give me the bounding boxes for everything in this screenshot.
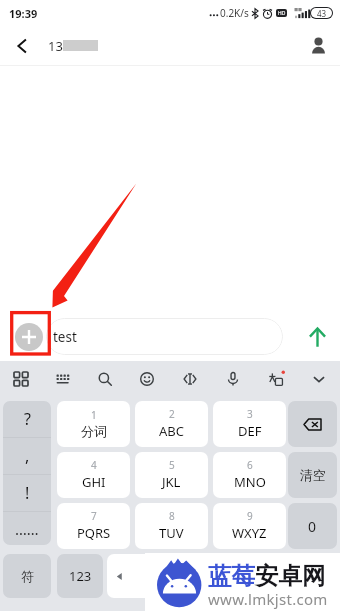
button[interactable]: 8 — [135, 503, 208, 549]
staticText: JKL — [162, 473, 181, 491]
staticText: test — [53, 328, 77, 346]
button[interactable]: test — [46, 318, 283, 355]
staticText: 7 — [91, 509, 97, 523]
button[interactable]: Keyboard layout — [42, 361, 84, 397]
staticText: 蓝莓 — [208, 561, 255, 591]
button[interactable]: 7 — [57, 503, 130, 549]
button[interactable]: 5 — [135, 452, 208, 498]
button[interactable]: 符 — [3, 554, 51, 598]
button[interactable]: 0 — [288, 503, 337, 549]
button[interactable]: Translate — [254, 361, 297, 397]
staticText: 5 — [169, 458, 175, 472]
button[interactable]: Backspace — [288, 401, 337, 447]
staticText: 4 — [91, 458, 97, 472]
button[interactable]: Apps — [0, 361, 42, 397]
staticText: 13 — [48, 37, 63, 55]
staticText: 43 — [317, 8, 327, 18]
button[interactable]: 6 — [213, 452, 286, 498]
staticText: MNO — [234, 473, 266, 491]
button[interactable]: 1 — [57, 401, 130, 447]
staticText: HD — [278, 10, 286, 17]
staticText: 分词 — [81, 423, 107, 439]
button[interactable]: Emoji — [126, 361, 168, 397]
staticText: ABC — [159, 422, 184, 440]
button[interactable]: Search — [84, 361, 126, 397]
staticText: 1 — [91, 408, 97, 422]
button[interactable]: 2 — [135, 401, 208, 447]
button[interactable]: Send — [299, 319, 335, 355]
staticText: 2 — [169, 407, 175, 421]
staticText: 0.2K/s — [220, 6, 249, 20]
staticText: DEF — [238, 422, 262, 440]
staticText: TUV — [159, 524, 184, 542]
staticText: 9 — [247, 509, 253, 523]
button[interactable]: Add attachment — [15, 323, 43, 351]
button[interactable]: 4 — [57, 452, 130, 498]
button[interactable]: Clipboard — [168, 361, 211, 397]
button[interactable]: Back — [0, 26, 44, 65]
button[interactable]: Voice input — [211, 361, 254, 397]
staticText: 8 — [169, 509, 175, 523]
button[interactable]: 3 — [213, 401, 286, 447]
button[interactable]: , — [3, 438, 51, 474]
staticText: WXYZ — [232, 524, 267, 542]
staticText: 符 — [21, 568, 34, 584]
staticText: 3 — [247, 407, 253, 421]
button[interactable]: Hide keyboard — [297, 361, 340, 397]
button[interactable]: 123 — [57, 554, 103, 598]
staticText: 123 — [69, 567, 92, 585]
button[interactable]: ! — [3, 475, 51, 511]
button[interactable]: 清空 — [288, 452, 337, 498]
staticText: …… — [15, 519, 39, 539]
staticText: , — [25, 445, 30, 467]
staticText: ! — [25, 482, 30, 504]
staticText: 19:39 — [9, 6, 38, 21]
button[interactable]: ? — [3, 401, 51, 437]
staticText: www.lmkjst.com — [208, 589, 328, 609]
staticText: 6 — [247, 458, 253, 472]
button[interactable]: Contact details — [296, 26, 340, 65]
button[interactable]: 9 — [213, 503, 286, 549]
button[interactable]: Previous page — [107, 554, 337, 598]
staticText: 清空 — [300, 467, 326, 483]
staticText: GHI — [82, 473, 106, 491]
staticText: 0 — [308, 517, 317, 536]
button[interactable]: …… — [3, 512, 51, 545]
staticText: 安卓网 — [255, 561, 326, 591]
staticText: ? — [24, 408, 31, 430]
staticText: PQRS — [77, 524, 111, 542]
